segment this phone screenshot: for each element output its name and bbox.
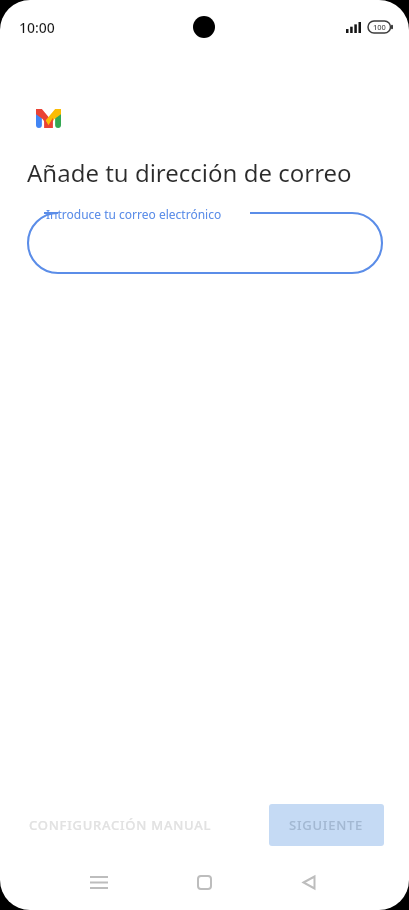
staticText: Introduce tu correo electrónico bbox=[46, 206, 222, 222]
button[interactable]: SIGUIENTE bbox=[269, 804, 384, 846]
staticText: Añade tu dirección de correo bbox=[27, 156, 352, 189]
staticText: 100 bbox=[373, 22, 386, 32]
button[interactable]: Introduce tu correo electrónico bbox=[0, 203, 409, 279]
staticText: CONFIGURACIÓN MANUAL bbox=[29, 816, 212, 834]
button[interactable]: Home bbox=[180, 858, 228, 906]
button[interactable]: Recents bbox=[75, 858, 123, 906]
staticText: SIGUIENTE bbox=[289, 816, 364, 834]
button[interactable]: CONFIGURACIÓN MANUAL bbox=[17, 806, 224, 844]
button[interactable]: Back bbox=[285, 858, 333, 906]
staticText: 10:00 bbox=[19, 18, 55, 37]
